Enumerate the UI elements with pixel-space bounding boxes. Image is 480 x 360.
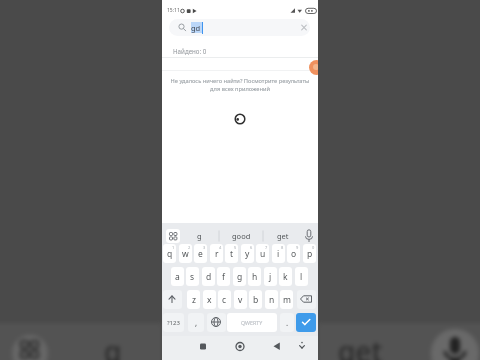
staticText: p — [307, 248, 313, 260]
button[interactable]: e — [194, 244, 207, 263]
staticText: . — [286, 317, 289, 328]
staticText: g — [104, 332, 122, 360]
staticText: c — [222, 294, 227, 306]
staticText: QWERTY — [241, 319, 263, 326]
button[interactable] — [169, 19, 310, 36]
button[interactable] — [292, 337, 312, 358]
staticText: n — [269, 294, 275, 306]
button[interactable]: y — [241, 244, 254, 263]
button[interactable]: k — [279, 267, 292, 286]
staticText: 1 — [172, 245, 175, 250]
staticText: r — [215, 248, 219, 260]
staticText: 2 — [188, 245, 191, 250]
button[interactable]: s — [186, 267, 199, 286]
button[interactable]: n — [265, 290, 278, 309]
button[interactable] — [302, 228, 317, 243]
button[interactable]: QWERTY — [227, 313, 277, 332]
button[interactable] — [163, 290, 182, 309]
button[interactable]: r — [210, 244, 223, 263]
button[interactable]: x — [203, 290, 216, 309]
staticText: 3 — [203, 245, 206, 250]
button[interactable]: get — [263, 229, 303, 243]
button[interactable]: a — [171, 267, 184, 286]
staticText: 8 — [281, 245, 284, 250]
staticText: get — [338, 332, 383, 360]
button[interactable] — [166, 229, 180, 243]
staticText: 5 — [234, 245, 237, 250]
staticText: 6 — [250, 245, 253, 250]
button[interactable]: o — [287, 244, 300, 263]
button[interactable]: j — [264, 267, 277, 286]
staticText: y — [245, 248, 250, 260]
staticText: u — [260, 248, 266, 260]
staticText: b — [253, 294, 259, 306]
button[interactable]: ?123 — [163, 313, 184, 332]
button[interactable] — [228, 337, 252, 358]
button[interactable] — [297, 290, 316, 309]
button[interactable]: g — [180, 229, 219, 243]
staticText: d — [206, 271, 212, 283]
button[interactable]: , — [188, 313, 204, 332]
staticText: 0 — [312, 245, 315, 250]
button[interactable]: . — [280, 313, 294, 332]
button[interactable]: p — [303, 244, 316, 263]
staticText: 4 — [219, 245, 222, 250]
staticText: i — [277, 248, 280, 260]
staticText: ?123 — [167, 319, 180, 327]
staticText: f — [222, 271, 225, 283]
button[interactable]: g — [233, 267, 246, 286]
staticText: Не удалось ничего найти? Посмотрите резу… — [162, 77, 318, 97]
button[interactable]: d — [202, 267, 215, 286]
staticText: v — [238, 294, 243, 306]
staticText: m — [283, 294, 291, 306]
button[interactable]: w — [179, 244, 192, 263]
staticText: Найдено: 0 — [173, 47, 207, 55]
button[interactable]: u — [256, 244, 269, 263]
staticText: z — [192, 294, 196, 306]
staticText: , — [195, 317, 198, 328]
staticText: x — [207, 294, 212, 306]
button[interactable] — [191, 337, 215, 358]
button[interactable]: i — [272, 244, 285, 263]
staticText: w — [182, 248, 189, 260]
button[interactable] — [265, 337, 288, 358]
staticText: get — [277, 231, 289, 241]
button[interactable]: h — [248, 267, 261, 286]
staticText: gd — [191, 23, 201, 33]
button[interactable]: l — [295, 267, 308, 286]
staticText: good — [232, 231, 251, 241]
button[interactable]: c — [218, 290, 231, 309]
staticText: e — [198, 248, 203, 260]
button[interactable]: t — [225, 244, 238, 263]
staticText: j — [269, 271, 272, 283]
button[interactable] — [207, 313, 226, 332]
button[interactable] — [309, 60, 318, 75]
staticText: s — [190, 271, 195, 283]
staticText: o — [291, 248, 297, 260]
staticText: g — [237, 271, 243, 283]
button[interactable]: z — [187, 290, 200, 309]
staticText: q — [167, 248, 173, 260]
staticText: t — [230, 248, 234, 260]
button[interactable]: v — [234, 290, 247, 309]
button[interactable]: m — [280, 290, 293, 309]
staticText: h — [252, 271, 258, 283]
staticText: a — [175, 271, 180, 283]
staticText: 15:11 — [167, 7, 180, 14]
button[interactable]: q — [163, 244, 176, 263]
button[interactable] — [296, 313, 316, 332]
staticText: 7 — [265, 245, 268, 250]
staticText: 9 — [296, 245, 299, 250]
button[interactable]: f — [217, 267, 230, 286]
button[interactable] — [297, 21, 310, 34]
staticText: k — [283, 271, 288, 283]
staticText: l — [300, 271, 303, 283]
button[interactable]: good — [219, 229, 263, 243]
button[interactable]: b — [249, 290, 262, 309]
staticText: g — [197, 231, 202, 241]
